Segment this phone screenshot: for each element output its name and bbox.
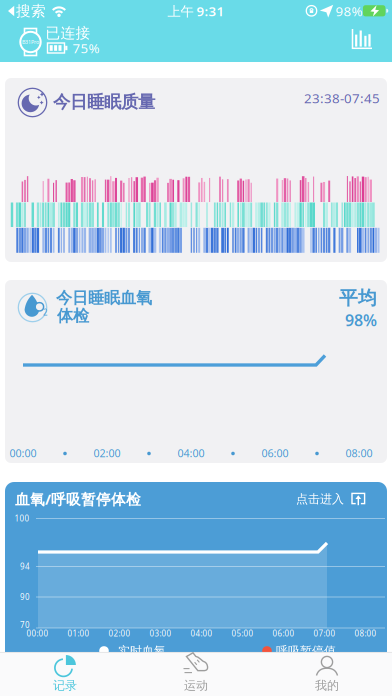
button[interactable]: 统计 [340, 25, 380, 55]
staticText: 今日睡眠血氧 [56, 288, 152, 308]
staticText: 02:00 [108, 628, 130, 639]
staticText: 75% [72, 39, 99, 57]
staticText: 运动 [184, 678, 208, 693]
staticText: 07:00 [313, 628, 335, 639]
staticText: 00:00 [9, 446, 36, 460]
button[interactable]: 我的 [262, 652, 392, 696]
staticText: 23:38-07:45 [304, 89, 380, 107]
staticText: 98% [335, 2, 362, 20]
staticText: 点击进入 [296, 492, 344, 506]
staticText: 08:00 [354, 628, 376, 639]
staticText: 已连接 [45, 24, 90, 42]
staticText: 02:00 [93, 446, 120, 460]
button[interactable]: 记录 [0, 652, 130, 696]
staticText: 04:00 [190, 628, 212, 639]
staticText: 2 [43, 307, 48, 318]
staticText: 06:00 [261, 446, 288, 460]
staticText: 100 [14, 513, 29, 524]
staticText: 04:00 [177, 446, 204, 460]
staticText: 搜索 [16, 2, 46, 20]
staticText: 94 [20, 561, 30, 572]
staticText: 血氧/呼吸暂停体检 [15, 489, 141, 509]
staticText: 实时血氧 [118, 644, 166, 658]
staticText: 记录 [53, 678, 77, 693]
staticText: 上午 9:31 [167, 2, 224, 20]
staticText: 00:00 [26, 628, 48, 639]
button[interactable]: 运动 [131, 652, 261, 696]
staticText: 90 [20, 592, 30, 602]
staticText: 06:00 [272, 628, 294, 639]
staticText: 今日睡眠质量 [53, 91, 155, 113]
staticText: 08:00 [345, 446, 372, 460]
staticText: 体检 [57, 306, 89, 326]
staticText: 我的 [315, 678, 339, 693]
staticText: 70 [20, 620, 30, 630]
staticText: 呼吸暂停值 [276, 644, 336, 658]
button[interactable]: 点击进入 [296, 487, 366, 511]
staticText: 03:00 [149, 628, 171, 639]
staticText: B31Pro [22, 38, 39, 46]
staticText: 05:00 [231, 628, 253, 639]
staticText: 01:00 [67, 628, 89, 639]
staticText: 平均 [339, 286, 377, 309]
staticText: 98% [345, 309, 377, 331]
